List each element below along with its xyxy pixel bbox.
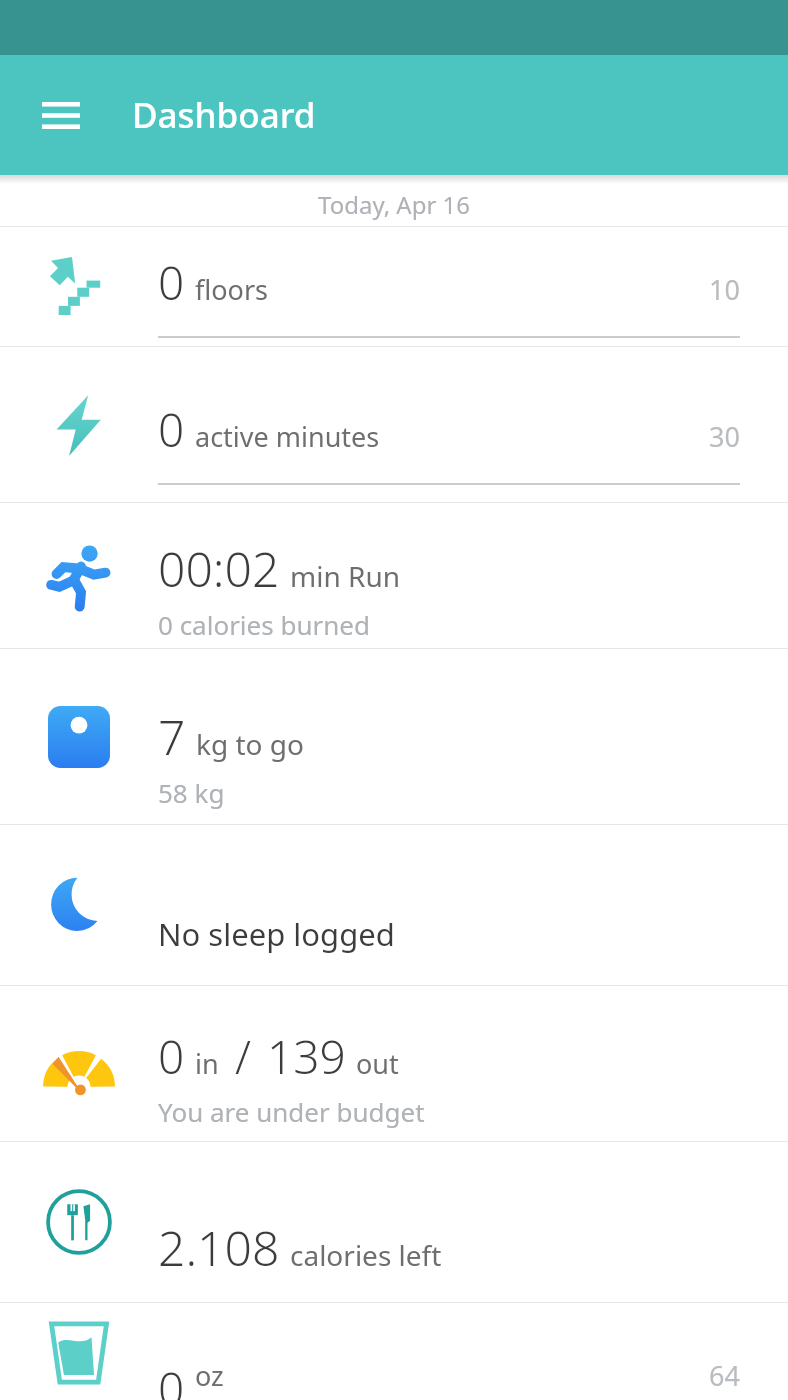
staticText: out	[356, 1045, 399, 1082]
button[interactable]: Calories in and out	[0, 986, 788, 1141]
staticText: 0 calories burned	[158, 607, 370, 642]
staticText: 10	[709, 271, 740, 308]
staticText: active minutes	[195, 418, 380, 455]
staticText: oz	[195, 1357, 224, 1394]
staticText: 2.108	[158, 1215, 280, 1280]
staticText: 0	[158, 1357, 185, 1400]
staticText: 139	[267, 1025, 346, 1088]
staticText: 58 kg	[158, 775, 225, 810]
staticText: 0	[158, 1025, 185, 1088]
staticText: 00:02	[158, 536, 280, 601]
staticText: Dashboard	[132, 91, 316, 139]
staticText: floors	[195, 271, 269, 308]
button[interactable]: Weight	[0, 649, 788, 824]
staticText: min Run	[290, 557, 401, 595]
staticText: 7	[158, 704, 186, 769]
button[interactable]: Water	[0, 1303, 788, 1400]
staticText: 0	[158, 251, 185, 314]
staticText: /	[235, 1025, 251, 1088]
staticText: You are under budget	[158, 1094, 425, 1129]
button[interactable]: Calories left	[0, 1142, 788, 1302]
staticText: 0	[158, 398, 185, 461]
staticText: Today, Apr 16	[318, 188, 471, 221]
button[interactable]: Sleep	[0, 825, 788, 985]
button[interactable]: Run activity	[0, 503, 788, 648]
staticText: 64	[709, 1357, 740, 1394]
staticText: in	[195, 1045, 219, 1082]
button[interactable]: Open navigation menu	[26, 80, 96, 150]
button[interactable]: Active minutes	[0, 347, 788, 502]
button[interactable]: Floors	[0, 227, 788, 346]
staticText: 30	[709, 418, 740, 455]
staticText: calories left	[290, 1236, 442, 1274]
staticText: No sleep logged	[158, 913, 395, 955]
staticText: kg to go	[196, 725, 304, 763]
